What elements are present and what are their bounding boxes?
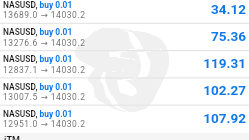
staticText: 13276.6 → 14030.2 <box>3 38 86 48</box>
staticText: 75.36 <box>0 28 246 44</box>
staticText: iTM <box>4 135 20 140</box>
staticText: 13007.5 → 14030.2 <box>3 92 86 102</box>
staticText: NASUSD, buy 0.01 <box>3 0 73 10</box>
button[interactable] <box>0 51 249 78</box>
staticText: 102.27 <box>0 82 246 98</box>
button[interactable] <box>0 24 249 51</box>
staticText: 119.31 <box>0 55 246 71</box>
button[interactable] <box>0 0 249 24</box>
button[interactable] <box>0 78 249 105</box>
staticText: 107.92 <box>0 110 246 126</box>
button[interactable] <box>0 106 249 133</box>
staticText: 12951.0 → 14030.2 <box>3 119 86 129</box>
staticText: 34.12 <box>0 1 246 17</box>
staticText: NASUSD, buy 0.01 <box>3 27 73 37</box>
staticText: NASUSD, buy 0.01 <box>3 82 73 92</box>
staticText: 12837.1 → 14030.2 <box>3 65 86 75</box>
staticText: NASUSD, buy 0.01 <box>3 54 73 64</box>
staticText: 13689.0 → 14030.2 <box>3 10 86 20</box>
button[interactable]: iTM <box>0 133 249 140</box>
staticText: NASUSD, buy 0.01 <box>3 109 73 119</box>
